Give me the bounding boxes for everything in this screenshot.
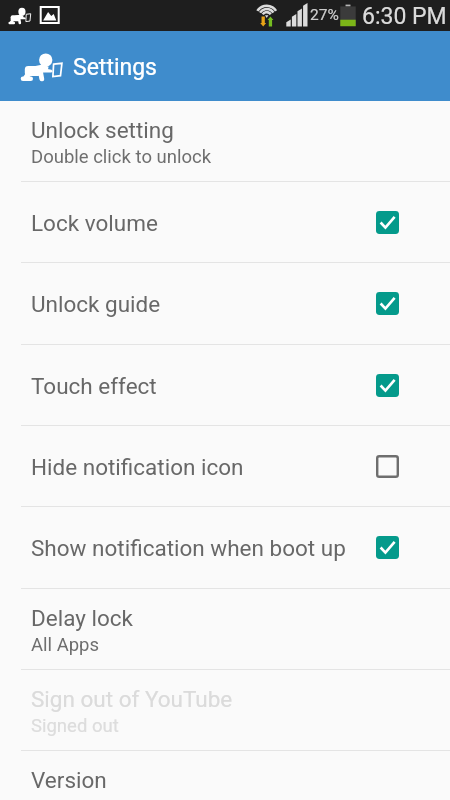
staticText: Settings: [73, 54, 157, 81]
staticText: Unlock setting: [31, 117, 174, 143]
staticText: Version: [31, 767, 107, 793]
staticText: Touch effect: [31, 373, 157, 399]
button[interactable]: Unlock guide: [0, 263, 450, 344]
button[interactable]: Delay lock: [0, 589, 450, 669]
staticText: All Apps: [31, 634, 100, 656]
button[interactable]: Hide notification icon: [0, 426, 450, 506]
button[interactable]: Show notification when boot up: [0, 507, 450, 588]
other: Baby lock app icon: [20, 54, 64, 84]
button[interactable]: Version: [0, 751, 450, 800]
staticText: Lock volume: [31, 210, 158, 236]
staticText: Delay lock: [31, 605, 133, 631]
staticText: Show notification when boot up: [31, 535, 346, 561]
button[interactable]: Unlock setting: [0, 101, 450, 181]
button[interactable]: Sign out of YouTube: [0, 670, 450, 750]
staticText: Unlock guide: [31, 291, 161, 317]
staticText: Hide notification icon: [31, 454, 244, 480]
button[interactable]: Touch effect: [0, 345, 450, 425]
staticText: Double click to unlock: [31, 146, 212, 168]
button[interactable]: Lock volume: [0, 182, 450, 262]
staticText: 27%: [310, 6, 339, 24]
staticText: 6:30 PM: [362, 3, 447, 30]
staticText: Signed out: [31, 715, 119, 737]
staticText: Sign out of YouTube: [31, 686, 233, 712]
